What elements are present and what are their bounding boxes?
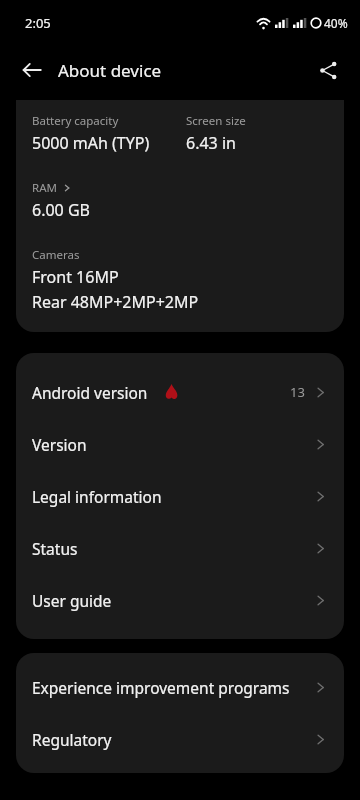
staticText: Version: [32, 434, 87, 455]
button[interactable]: Share: [308, 50, 348, 90]
staticText: Screen size: [186, 113, 246, 129]
staticText: Legal information: [32, 486, 162, 507]
staticText: User guide: [32, 590, 112, 611]
staticText: Status: [32, 538, 78, 559]
staticText: 6.00 GB: [32, 199, 90, 221]
button[interactable]: Version: [16, 418, 344, 470]
staticText: 6.43 in: [186, 132, 236, 154]
staticText: 40%: [324, 15, 348, 31]
staticText: 13: [290, 383, 305, 401]
staticText: About device: [58, 59, 162, 82]
staticText: 5000 mAh (TYP): [32, 132, 150, 154]
button[interactable]: Android version: [16, 366, 344, 418]
staticText: RAM: [32, 180, 57, 196]
button[interactable]: Status: [16, 522, 344, 574]
staticText: Front 16MP: [32, 266, 119, 288]
button[interactable]: RAM: [32, 180, 328, 221]
staticText: Experience improvement programs: [32, 677, 290, 698]
button[interactable]: Regulatory: [16, 713, 344, 765]
staticText: Cameras: [32, 247, 80, 263]
button[interactable]: Experience improvement programs: [16, 661, 344, 713]
staticText: Battery capacity: [32, 113, 119, 129]
staticText: Regulatory: [32, 729, 112, 750]
staticText: Android version: [32, 382, 148, 403]
button[interactable]: Back: [12, 50, 52, 90]
staticText: 2:05: [25, 14, 51, 32]
button[interactable]: Legal information: [16, 470, 344, 522]
button[interactable]: User guide: [16, 574, 344, 626]
staticText: Rear 48MP+2MP+2MP: [32, 291, 199, 313]
